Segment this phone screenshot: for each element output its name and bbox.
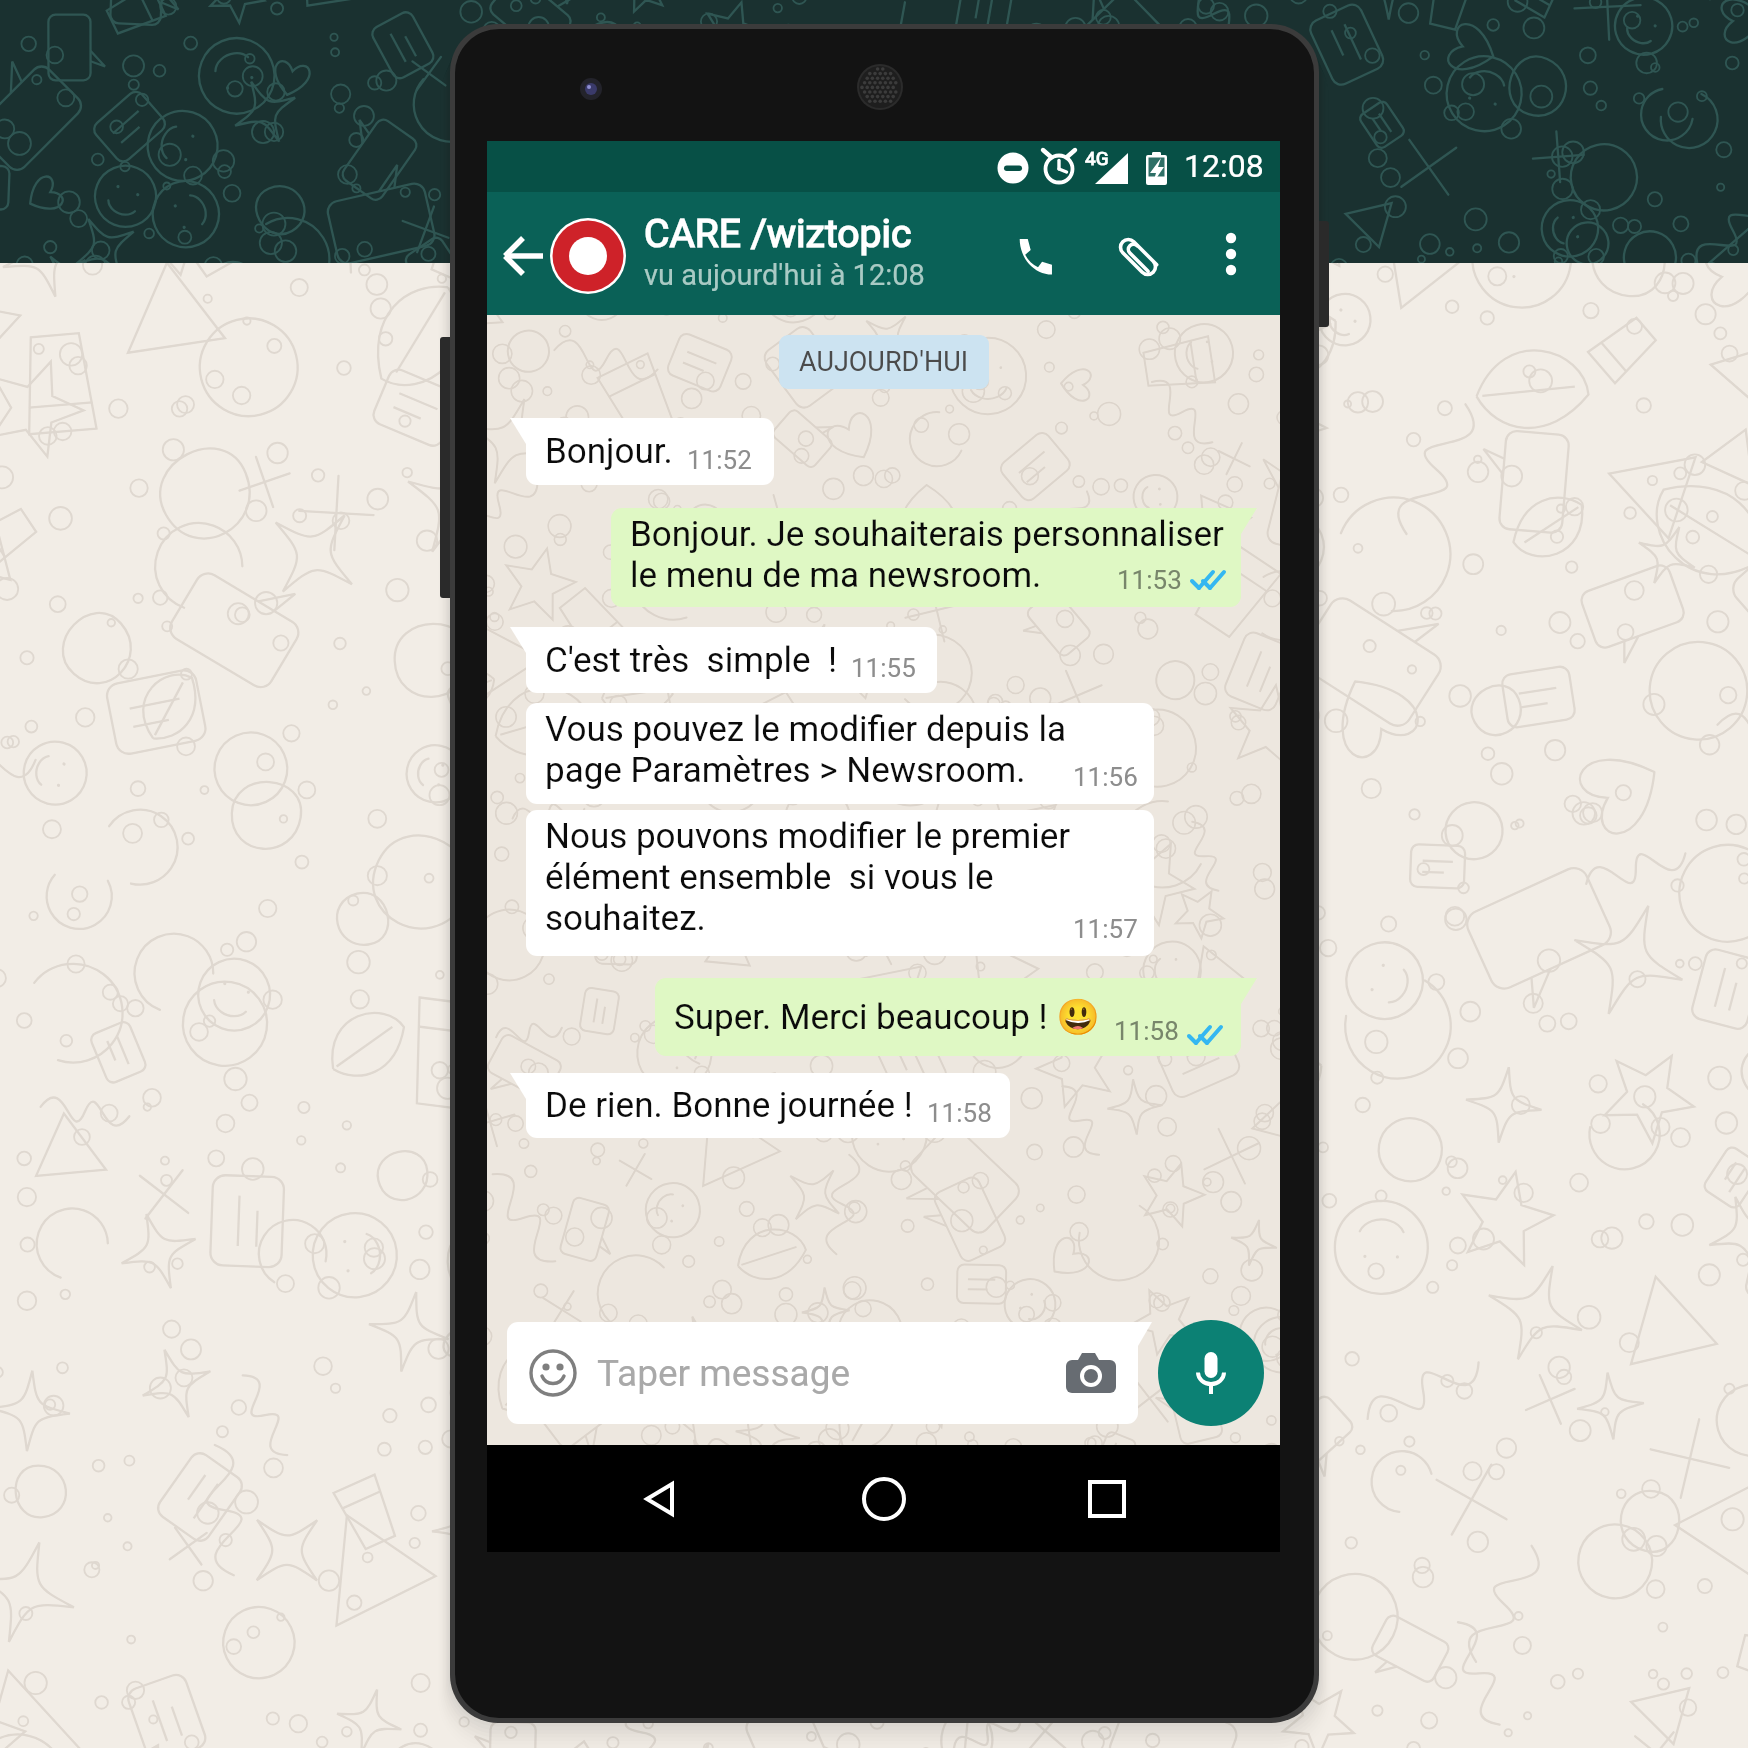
staticText: 11:56	[1073, 762, 1138, 792]
button[interactable]: Emoji	[507, 1322, 1138, 1424]
staticText: 11:53	[1117, 565, 1182, 595]
staticText: Taper message	[597, 1352, 851, 1395]
button[interactable]: C'est très simple !	[526, 627, 937, 693]
button[interactable]: Call	[1001, 224, 1067, 290]
staticText: C'est très simple !	[545, 640, 837, 681]
button[interactable]: Bonjour.	[526, 418, 774, 485]
staticText: 12:08	[1184, 147, 1264, 185]
button[interactable]: Record voice message	[1158, 1320, 1264, 1426]
staticText: Bonjour. Je souhaiterais personnaliser	[630, 514, 1224, 555]
staticText: Bonjour.	[545, 431, 673, 472]
button[interactable]: Recent apps	[1057, 1449, 1157, 1549]
button[interactable]: Vous pouvez le modifier depuis la	[526, 703, 1154, 804]
staticText: souhaitez.	[545, 898, 706, 939]
staticText: 11:58	[1114, 1016, 1179, 1046]
button[interactable]: Super. Merci beaucoup ! 😃	[655, 978, 1241, 1056]
staticText: AUJOURD'HUI	[799, 346, 969, 378]
staticText: 11:58	[927, 1098, 992, 1128]
button[interactable]: Emoji	[529, 1349, 577, 1397]
staticText: 11:52	[687, 445, 752, 475]
staticText: Super. Merci beaucoup ! 😃	[674, 997, 1100, 1038]
button[interactable]: Home	[834, 1449, 934, 1549]
staticText: Vous pouvez le modifier depuis la	[545, 709, 1066, 750]
staticText: page Paramètres > Newsroom.	[545, 750, 1026, 791]
button[interactable]: Nous pouvons modifier le premier	[526, 810, 1154, 956]
button[interactable]: Back	[487, 222, 559, 286]
button[interactable]: De rien. Bonne journée !	[526, 1073, 1010, 1138]
button[interactable]: Bonjour. Je souhaiterais personnaliser	[611, 508, 1241, 607]
staticText: élément ensemble si vous le	[545, 857, 994, 898]
button[interactable]: AUJOURD'HUI	[779, 335, 989, 389]
button[interactable]: Attach	[1105, 224, 1171, 290]
button[interactable]: Back	[611, 1449, 711, 1549]
staticText: De rien. Bonne journée !	[545, 1085, 913, 1126]
staticText: le menu de ma newsroom.	[630, 555, 1042, 596]
staticText: 11:55	[851, 653, 916, 683]
staticText: 4G	[1085, 147, 1109, 169]
staticText: vu aujourd'hui à 12:08	[644, 258, 925, 292]
button[interactable]: More options	[1201, 224, 1261, 284]
staticText: 11:57	[1073, 914, 1138, 944]
button[interactable]: Camera	[1066, 1353, 1116, 1393]
staticText: CARE /wiztopic	[644, 211, 912, 257]
staticText: Nous pouvons modifier le premier	[545, 816, 1071, 857]
